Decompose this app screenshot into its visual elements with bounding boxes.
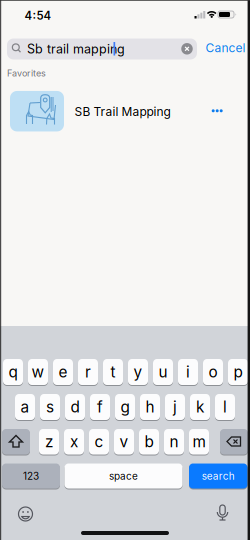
staticText: SB Trail Mapping [74, 104, 170, 119]
staticText: Sb trail mapping [27, 41, 125, 56]
staticText: x [70, 432, 78, 451]
staticText: u [158, 363, 167, 381]
staticText: 4:54 [24, 9, 51, 22]
staticText: h [145, 398, 154, 416]
staticText: e [58, 363, 67, 381]
staticText: j [173, 398, 177, 416]
staticText: t [110, 363, 115, 381]
staticText: b [144, 432, 153, 451]
staticText: m [192, 432, 205, 451]
staticText: Favorites [7, 68, 46, 79]
staticText: v [119, 432, 128, 451]
staticText: d [70, 398, 79, 416]
staticText: y [133, 363, 142, 381]
staticText: 123 [23, 470, 39, 482]
staticText: w [31, 363, 44, 381]
staticText: c [94, 432, 103, 451]
staticText: p [233, 363, 242, 381]
staticText: q [8, 363, 17, 381]
staticText: Cancel [205, 41, 245, 55]
staticText: search [202, 470, 235, 482]
staticText: space [109, 470, 138, 482]
staticText: g [120, 398, 129, 416]
staticText: o [208, 363, 217, 381]
staticText: a [20, 398, 29, 416]
staticText: k [196, 398, 204, 416]
staticText: l [223, 398, 227, 416]
staticText: i [186, 363, 190, 381]
staticText: f [97, 398, 103, 416]
staticText: s [46, 398, 54, 416]
staticText: z [45, 432, 53, 451]
staticText: n [169, 432, 178, 451]
staticText: r [85, 363, 91, 381]
